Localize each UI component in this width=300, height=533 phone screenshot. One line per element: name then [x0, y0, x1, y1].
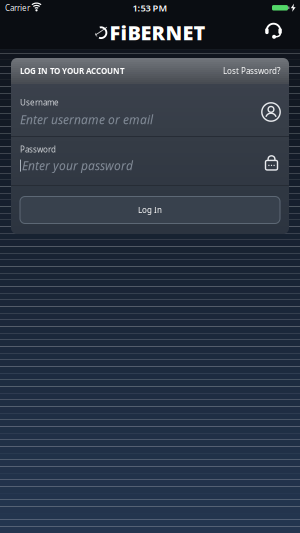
- staticText: Enter your password: [22, 158, 133, 173]
- staticText: Password: [20, 144, 56, 155]
- staticText: Log In: [138, 205, 162, 215]
- staticText: FiBERNET: [109, 19, 205, 46]
- staticText: Carrier: [5, 3, 30, 13]
- staticText: Enter username or email: [20, 112, 153, 127]
- staticText: Lost Password?: [223, 66, 280, 76]
- button[interactable]: Username: [11, 84, 289, 136]
- staticText: LOG IN TO YOUR ACCOUNT: [20, 66, 125, 76]
- staticText: 1:53 PM: [132, 2, 167, 14]
- button[interactable]: Lost Password?: [223, 66, 280, 76]
- button[interactable]: [264, 20, 282, 38]
- button[interactable]: Password: [11, 137, 289, 185]
- staticText: Username: [20, 97, 59, 108]
- button[interactable]: Log In: [20, 196, 280, 223]
